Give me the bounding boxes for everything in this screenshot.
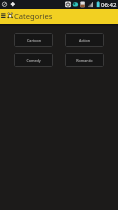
button[interactable]: Cartoon	[14, 33, 53, 47]
staticText: 06:42	[101, 1, 117, 9]
button[interactable]: Romantic	[65, 53, 104, 67]
button[interactable]: Comedy	[14, 53, 53, 67]
staticText: Categories	[14, 11, 53, 21]
staticText: Romantic	[76, 58, 93, 63]
staticText: Comedy	[26, 58, 41, 63]
button[interactable]: Open navigation menu	[0, 9, 8, 24]
staticText: Cartoon	[27, 38, 41, 43]
button[interactable]: Action	[65, 33, 104, 47]
staticText: Action	[79, 38, 90, 43]
